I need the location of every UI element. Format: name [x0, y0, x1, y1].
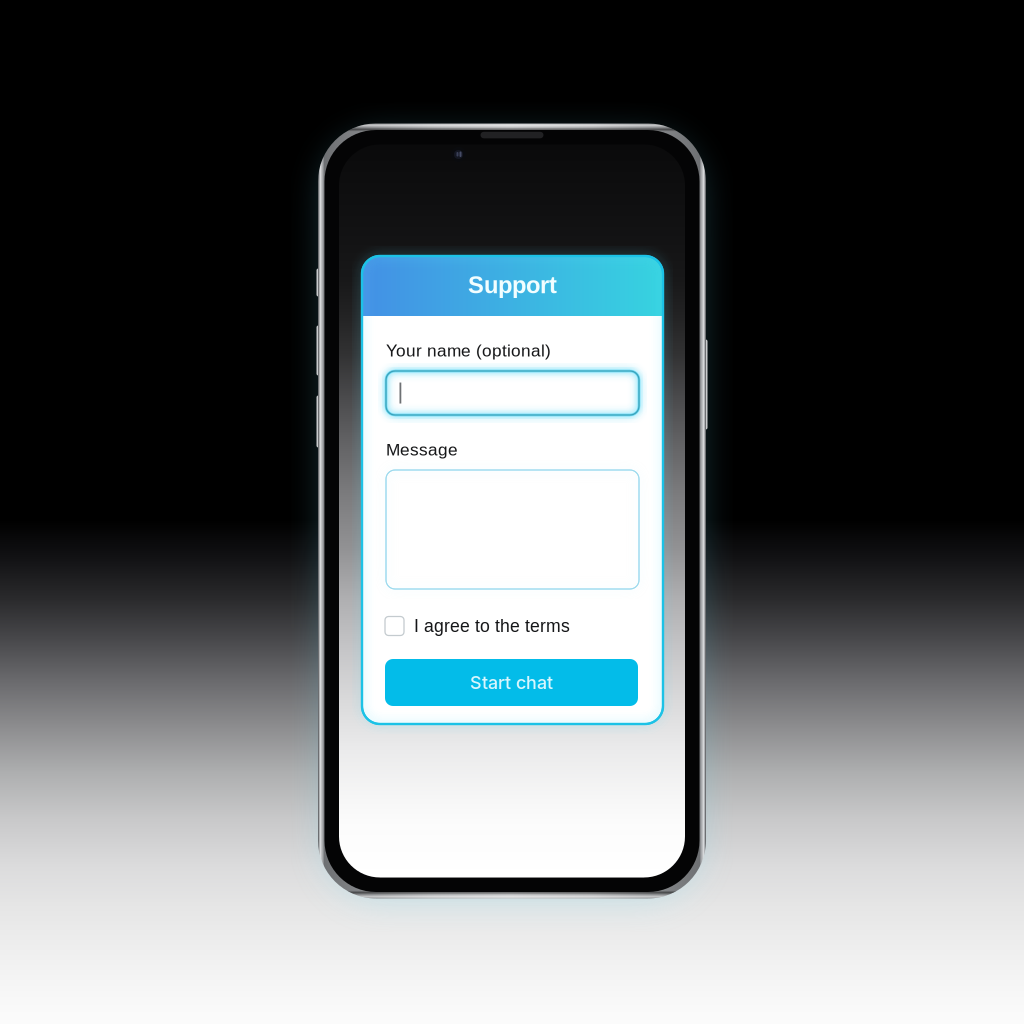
staticText: Start chat [470, 672, 553, 693]
staticText: Support [468, 272, 557, 298]
staticText: Message [386, 440, 458, 459]
button[interactable]: I agree to the terms [385, 615, 638, 637]
staticText: I agree to the terms [414, 616, 570, 636]
button[interactable]: Start chat [385, 659, 638, 706]
staticText: Your name (optional) [386, 341, 551, 360]
